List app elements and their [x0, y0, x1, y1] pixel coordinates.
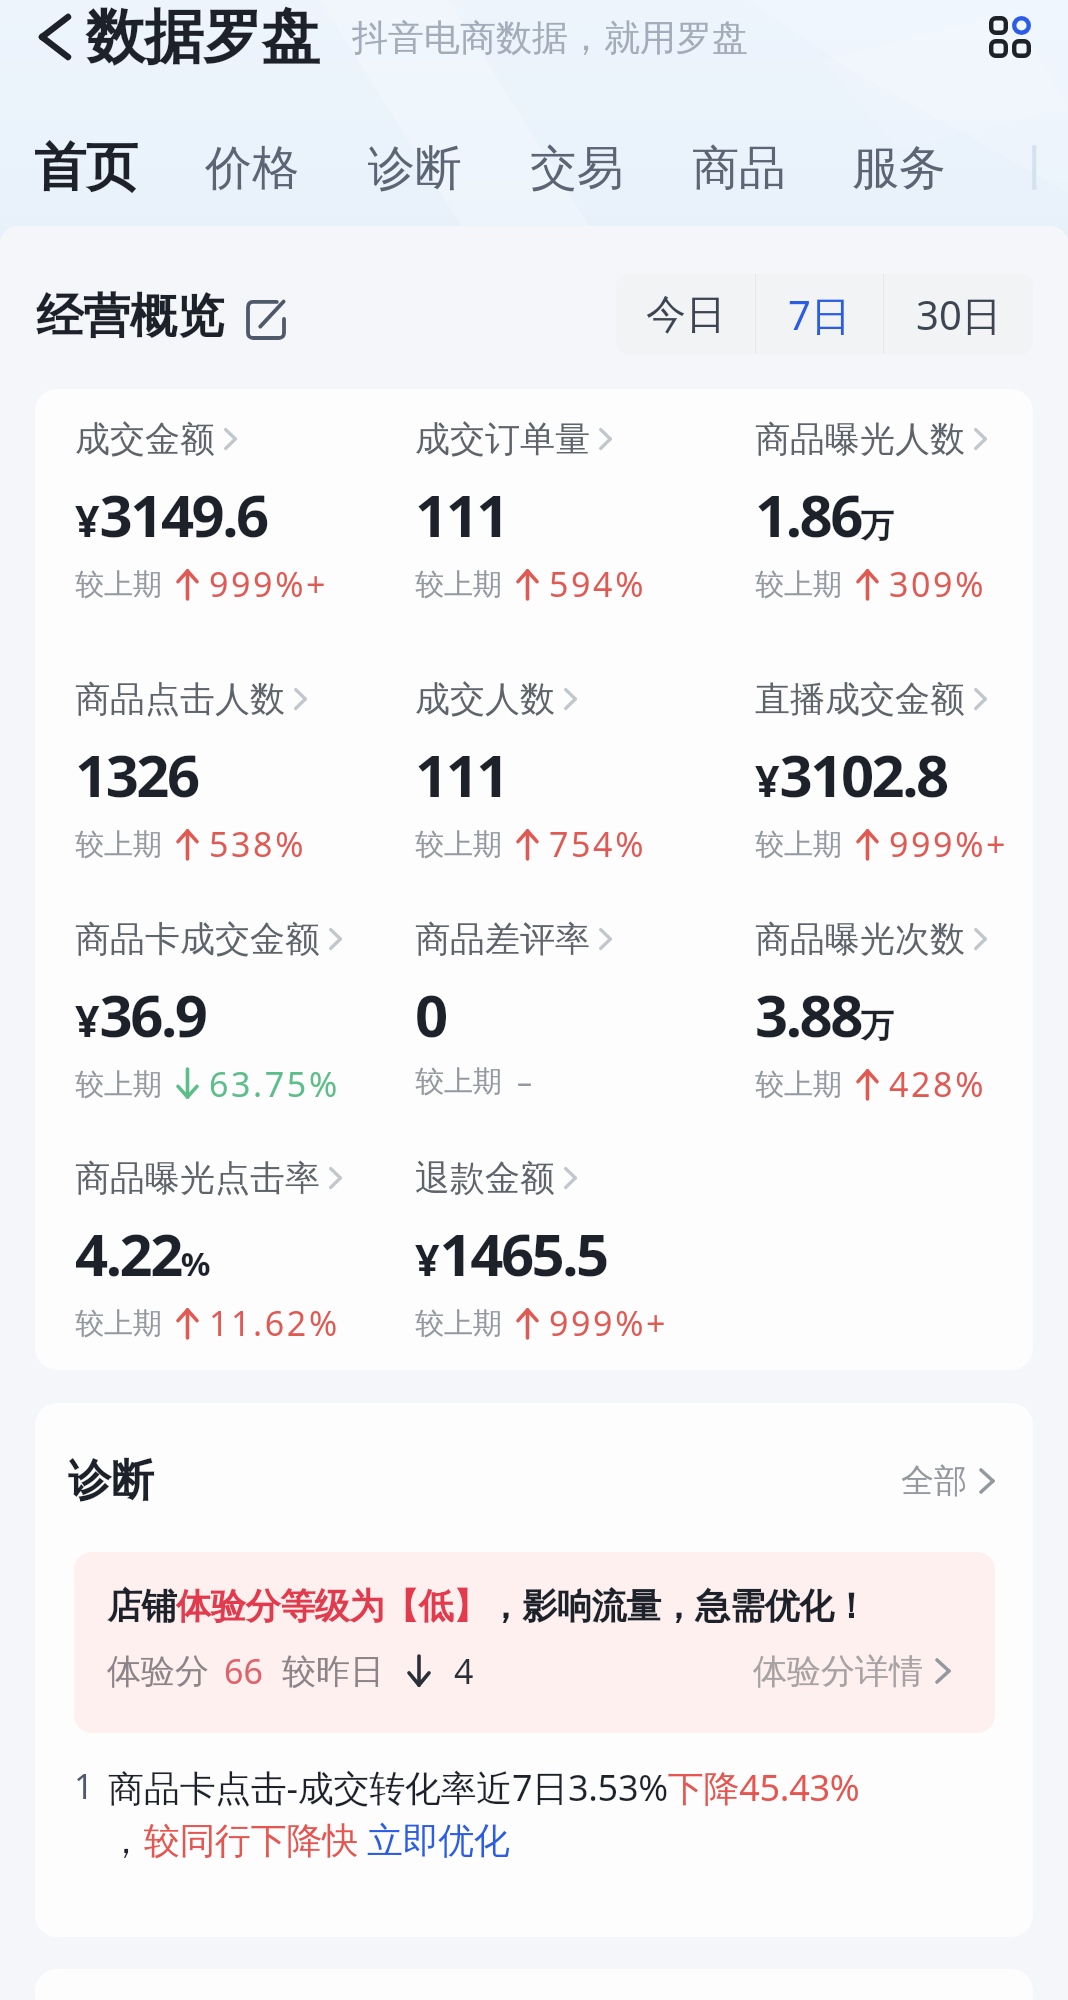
staticText: 999%+: [209, 561, 329, 607]
staticText: 较上期: [415, 826, 502, 863]
button[interactable]: 商品点击人数: [75, 677, 307, 867]
staticText: 首页: [34, 135, 138, 201]
button[interactable]: 商品差评率: [415, 917, 612, 1102]
staticText: 体验分详情: [753, 1650, 923, 1693]
staticText: 数据罗盘: [86, 0, 320, 74]
button[interactable]: All tools: [969, 0, 1051, 78]
button[interactable]: 商品曝光人数: [755, 417, 987, 607]
staticText: 3.88万: [755, 975, 894, 1054]
staticText: 较上期: [755, 566, 842, 603]
staticText: 较上期: [415, 1305, 502, 1342]
button[interactable]: 经营概览: [36, 287, 284, 346]
staticText: 商品卡点击-成交转化率近7日3.53%下降45.43% ，较同行下降快 立即优化: [108, 1763, 898, 1864]
staticText: 诊断: [68, 1454, 154, 1508]
staticText: 商品曝光次数: [755, 917, 965, 961]
staticText: 309%: [889, 561, 986, 607]
staticText: 较上期: [75, 1305, 162, 1342]
button[interactable]: 商品曝光点击率: [75, 1156, 342, 1346]
staticText: 594%: [549, 561, 646, 607]
button[interactable]: 30日: [884, 274, 1033, 354]
button[interactable]: 商品: [672, 110, 806, 226]
button[interactable]: 成交人数: [415, 677, 646, 867]
staticText: 66: [224, 1648, 263, 1694]
staticText: 体验分: [107, 1650, 209, 1693]
staticText: 4.22%: [75, 1214, 211, 1293]
staticText: 428%: [889, 1061, 986, 1107]
button[interactable]: 服务: [832, 110, 966, 226]
button[interactable]: 直播成交金额: [755, 677, 1009, 867]
button[interactable]: 成交金额: [75, 417, 329, 607]
button[interactable]: 商品曝光次数: [755, 917, 987, 1107]
button[interactable]: 店铺体验分等级为【低】，影响流量，急需优化！: [74, 1552, 995, 1733]
staticText: 4: [454, 1648, 474, 1694]
button[interactable]: 首页: [14, 110, 158, 226]
button[interactable]: 商品卡成交金额: [75, 917, 342, 1107]
button[interactable]: 7日: [756, 274, 883, 354]
button[interactable]: Back: [10, 0, 100, 74]
staticText: 价格: [205, 139, 299, 198]
staticText: 11.62%: [209, 1300, 340, 1346]
button[interactable]: 退款金额: [415, 1156, 669, 1346]
staticText: 商品卡成交金额: [75, 917, 320, 961]
staticText: 丨: [1012, 139, 1036, 198]
staticText: 较上期: [415, 566, 502, 603]
button[interactable]: 今日: [616, 274, 755, 354]
staticText: 538%: [209, 821, 306, 867]
staticText: 754%: [549, 821, 646, 867]
staticText: 111: [415, 735, 508, 814]
staticText: 今日: [646, 289, 726, 339]
staticText: 服务: [852, 139, 946, 198]
staticText: 1326: [75, 735, 198, 814]
staticText: 成交订单量: [415, 417, 590, 461]
staticText: ¥1465.5: [415, 1214, 607, 1293]
staticText: 全部: [901, 1460, 967, 1502]
staticText: 1.86万: [755, 475, 894, 554]
staticText: 0: [415, 975, 446, 1054]
staticText: ¥3149.6: [75, 475, 267, 554]
staticText: 较上期: [755, 1066, 842, 1103]
button[interactable]: 1: [35, 1763, 1033, 1937]
staticText: 较上期: [75, 826, 162, 863]
staticText: 商品曝光人数: [755, 417, 965, 461]
button[interactable]: 诊断: [348, 110, 482, 226]
staticText: 较上期: [75, 566, 162, 603]
staticText: ¥36.9: [75, 975, 206, 1054]
staticText: 直播成交金额: [755, 677, 965, 721]
staticText: 30日: [916, 287, 1002, 342]
staticText: 111: [415, 475, 508, 554]
staticText: 较昨日: [282, 1650, 384, 1693]
button[interactable]: 价格: [185, 110, 319, 226]
staticText: 7日: [788, 287, 851, 342]
button[interactable]: 全部: [901, 1460, 995, 1502]
staticText: 较上期: [75, 1066, 162, 1103]
staticText: 1: [74, 1763, 94, 1809]
staticText: –: [517, 1061, 532, 1102]
staticText: 商品: [692, 139, 786, 198]
staticText: 诊断: [368, 139, 462, 198]
staticText: 店铺体验分等级为【低】，影响流量，急需优化！: [107, 1584, 869, 1628]
staticText: 商品曝光点击率: [75, 1156, 320, 1200]
staticText: 商品点击人数: [75, 677, 285, 721]
staticText: 较上期: [755, 826, 842, 863]
staticText: 成交金额: [75, 417, 215, 461]
staticText: 63.75%: [209, 1061, 340, 1107]
staticText: 较上期: [415, 1063, 502, 1100]
staticText: 退款金额: [415, 1156, 555, 1200]
staticText: 999%+: [549, 1300, 669, 1346]
button[interactable]: 交易: [510, 110, 644, 226]
button[interactable]: 成交订单量: [415, 417, 646, 607]
staticText: 999%+: [889, 821, 1009, 867]
staticText: 抖音电商数据，就用罗盘: [352, 15, 748, 60]
staticText: 商品差评率: [415, 917, 590, 961]
staticText: 经营概览: [36, 287, 224, 346]
staticText: 成交人数: [415, 677, 555, 721]
staticText: ¥3102.8: [755, 735, 947, 814]
staticText: 交易: [530, 139, 624, 198]
